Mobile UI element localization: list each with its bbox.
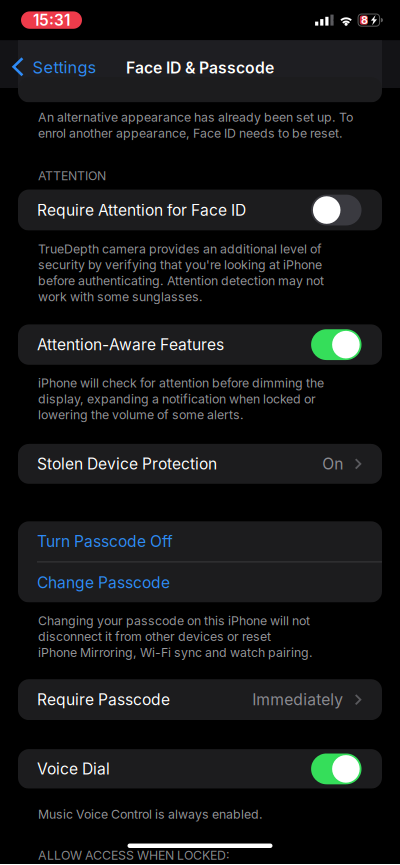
staticText: Changing your passcode on this iPhone wi…: [38, 613, 310, 628]
button[interactable]: Voice Dial: [18, 749, 382, 789]
staticText: Immediately: [252, 690, 343, 709]
staticText: Stolen Device Protection: [37, 454, 217, 473]
button[interactable]: Stolen Device Protection: [18, 444, 382, 484]
staticText: TrueDepth camera provides an additional …: [38, 241, 322, 256]
staticText: disconnect it from other devices or rese…: [38, 629, 271, 644]
button[interactable]: Turn Passcode Off: [18, 521, 382, 561]
staticText: lowering the volume of some alerts.: [38, 407, 244, 422]
staticText: Require Attention for Face ID: [37, 201, 246, 219]
staticText: Attention-Aware Features: [37, 335, 224, 354]
staticText: Face ID & Passcode: [126, 58, 274, 77]
staticText: Music Voice Control is always enabled.: [38, 807, 263, 822]
staticText: 8: [361, 14, 368, 26]
staticText: An alternative appearance has already be…: [38, 110, 353, 125]
staticText: Turn Passcode Off: [37, 532, 173, 551]
staticText: iPhone Mirroring, Wi-Fi sync and watch p…: [38, 645, 313, 660]
staticText: display, expanding a notification when l…: [38, 391, 316, 406]
staticText: Settings: [32, 57, 96, 77]
button[interactable]: Require Passcode: [18, 679, 382, 720]
button[interactable]: Settings: [0, 57, 96, 77]
staticText: work with some sunglasses.: [38, 289, 203, 304]
staticText: Require Passcode: [37, 690, 170, 709]
staticText: security by verifying that you're lookin…: [38, 257, 322, 272]
staticText: ALLOW ACCESS WHEN LOCKED:: [38, 848, 230, 863]
button[interactable]: Attention-Aware Features: [18, 324, 382, 365]
staticText: iPhone will check for attention before d…: [38, 376, 324, 390]
staticText: enrol another appearance, Face ID needs …: [38, 126, 343, 141]
staticText: Voice Dial: [37, 759, 110, 778]
staticText: On: [322, 454, 343, 473]
button[interactable]: Require Attention for Face ID: [18, 189, 382, 231]
staticText: Change Passcode: [37, 573, 170, 592]
staticText: ATTENTION: [38, 168, 106, 183]
button[interactable]: Change Passcode: [18, 562, 382, 602]
staticText: 15:31: [33, 11, 70, 29]
staticText: before authenticating. Attention detecti…: [38, 273, 324, 288]
